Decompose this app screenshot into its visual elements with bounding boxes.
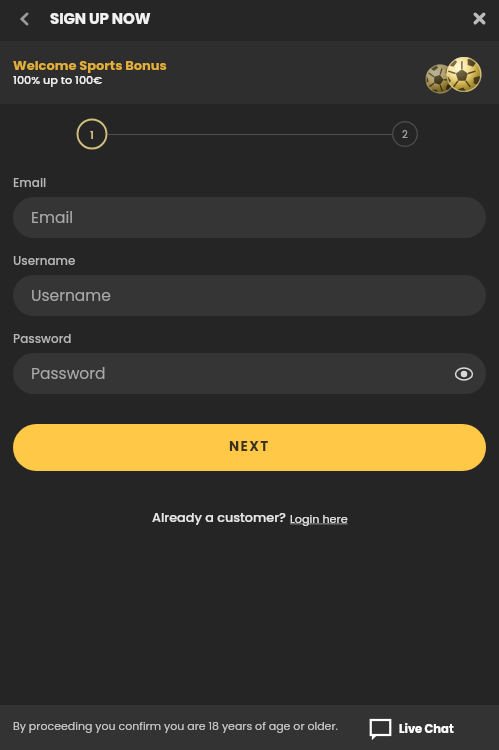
staticText: 100% up to 100€	[13, 72, 103, 88]
staticText: By proceeding you confirm you are 18 yea…	[13, 718, 338, 733]
staticText: SIGN UP NOW	[50, 8, 151, 29]
staticText: Password	[13, 330, 72, 347]
button[interactable]: Password	[13, 353, 486, 394]
staticText: 2	[402, 127, 408, 141]
staticText: Password	[31, 363, 106, 385]
staticText: Login here	[290, 511, 348, 527]
button[interactable]: NEXT	[13, 424, 486, 471]
staticText: Welcome Sports Bonus	[13, 56, 167, 74]
button[interactable]: Back	[10, 7, 38, 35]
staticText: 1	[90, 127, 94, 142]
staticText: NEXT	[229, 437, 270, 456]
staticText: Email	[13, 174, 47, 191]
staticText: Live Chat	[399, 721, 454, 737]
staticText: Username	[31, 285, 111, 307]
staticText: Email	[31, 207, 74, 229]
button[interactable]: Login here	[290, 511, 348, 527]
staticText: Already a customer?	[152, 509, 286, 527]
button[interactable]: Show password	[451, 361, 477, 387]
button[interactable]: Username	[13, 275, 486, 316]
button[interactable]: Live Chat	[370, 717, 454, 738]
button[interactable]: Email	[13, 197, 486, 238]
button[interactable]: Close	[463, 7, 491, 35]
staticText: Username	[13, 252, 76, 269]
